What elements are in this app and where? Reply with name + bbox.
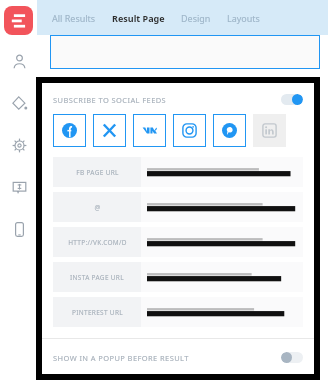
button[interactable]: @ [53, 192, 141, 222]
staticText: PINTEREST URL [72, 308, 123, 317]
button[interactable]: Theme [7, 91, 31, 115]
staticText: FB PAGE URL [76, 168, 119, 177]
staticText: Design [181, 12, 211, 24]
button[interactable]: Toggle off [281, 352, 303, 363]
button[interactable]: Pricing [7, 175, 31, 199]
button[interactable]: Design [179, 8, 213, 28]
button[interactable] [141, 227, 303, 257]
button[interactable] [141, 297, 303, 327]
button[interactable]: Pinterest [213, 114, 246, 147]
staticText: Result Page [112, 12, 165, 24]
staticText: All Results [52, 12, 96, 24]
button[interactable] [141, 157, 303, 187]
staticText: SUBSCRIBE TO SOCIAL FEEDS [53, 95, 167, 105]
button[interactable]: INSTA PAGE URL [53, 262, 141, 292]
button[interactable]: Toggle on [281, 94, 303, 105]
staticText: HTTP://VK.COM/D [68, 238, 127, 247]
button[interactable]: VK [133, 114, 166, 147]
button[interactable]: Result Page [110, 8, 167, 28]
button[interactable]: Account [7, 49, 31, 73]
button[interactable]: Instagram [173, 114, 206, 147]
button[interactable]: HTTP://VK.COM/D [53, 227, 141, 257]
button[interactable]: LinkedIn [253, 114, 286, 147]
staticText: SHOW IN A POPUP BEFORE RESULT [53, 353, 189, 363]
button[interactable]: X [93, 114, 126, 147]
button[interactable]: Layouts [225, 8, 262, 28]
staticText: @ [94, 203, 101, 212]
button[interactable]: Mobile preview [7, 217, 31, 241]
staticText: INSTA PAGE URL [70, 273, 124, 282]
button[interactable]: Facebook [53, 114, 86, 147]
button[interactable] [141, 192, 303, 222]
button[interactable]: Settings [7, 133, 31, 157]
button[interactable] [141, 262, 303, 292]
button[interactable]: FB PAGE URL [53, 157, 141, 187]
button[interactable]: App logo [4, 6, 33, 35]
button[interactable]: PINTEREST URL [53, 297, 141, 327]
button[interactable]: All Results [50, 8, 98, 28]
staticText: Layouts [227, 12, 260, 24]
